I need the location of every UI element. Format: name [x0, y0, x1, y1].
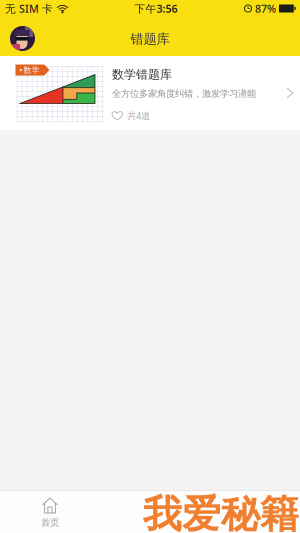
- staticText: 首页: [41, 517, 59, 528]
- button[interactable]: 个人主页: [0, 17, 41, 56]
- staticText: 共4道: [127, 109, 150, 122]
- button[interactable]: 数学: [0, 56, 300, 130]
- staticText: 数学错题库: [112, 67, 172, 82]
- staticText: 错题库: [130, 31, 169, 47]
- staticText: 无 SIM 卡: [5, 1, 53, 16]
- staticText: 87%: [255, 1, 276, 16]
- button[interactable]: 首页: [0, 491, 100, 533]
- staticText: 下午3:56: [134, 1, 177, 16]
- staticText: 我爱秘籍: [143, 490, 299, 533]
- staticText: 数学: [24, 65, 40, 75]
- staticText: 全方位多家角度纠错，激发学习潜能: [112, 88, 256, 99]
